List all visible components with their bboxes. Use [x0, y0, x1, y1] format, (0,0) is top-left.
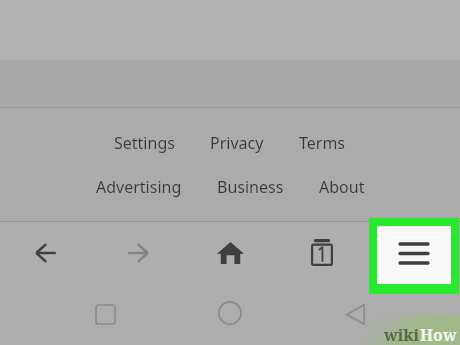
- staticText: wiki: [384, 324, 420, 345]
- button[interactable]: Back: [16, 223, 76, 283]
- staticText: Advertising: [96, 176, 182, 198]
- button[interactable]: About: [319, 168, 365, 206]
- button[interactable]: Business: [217, 168, 284, 206]
- button[interactable]: Advertising: [96, 168, 182, 206]
- button[interactable]: Forward: [108, 223, 168, 283]
- staticText: How: [420, 324, 457, 345]
- button[interactable]: Privacy: [210, 124, 264, 162]
- button[interactable]: Settings: [114, 124, 175, 162]
- staticText: Business: [217, 176, 284, 198]
- button[interactable]: Tabs: [292, 222, 352, 282]
- button[interactable]: Home: [206, 289, 254, 337]
- staticText: Privacy: [210, 132, 264, 154]
- button[interactable]: Terms: [299, 124, 346, 162]
- button[interactable]: Home: [200, 223, 260, 283]
- button[interactable]: Menu: [369, 218, 459, 294]
- button[interactable]: Back: [331, 290, 379, 338]
- staticText: Settings: [114, 132, 175, 154]
- staticText: Terms: [299, 132, 346, 154]
- staticText: About: [319, 176, 365, 198]
- button[interactable]: Recents: [81, 290, 129, 338]
